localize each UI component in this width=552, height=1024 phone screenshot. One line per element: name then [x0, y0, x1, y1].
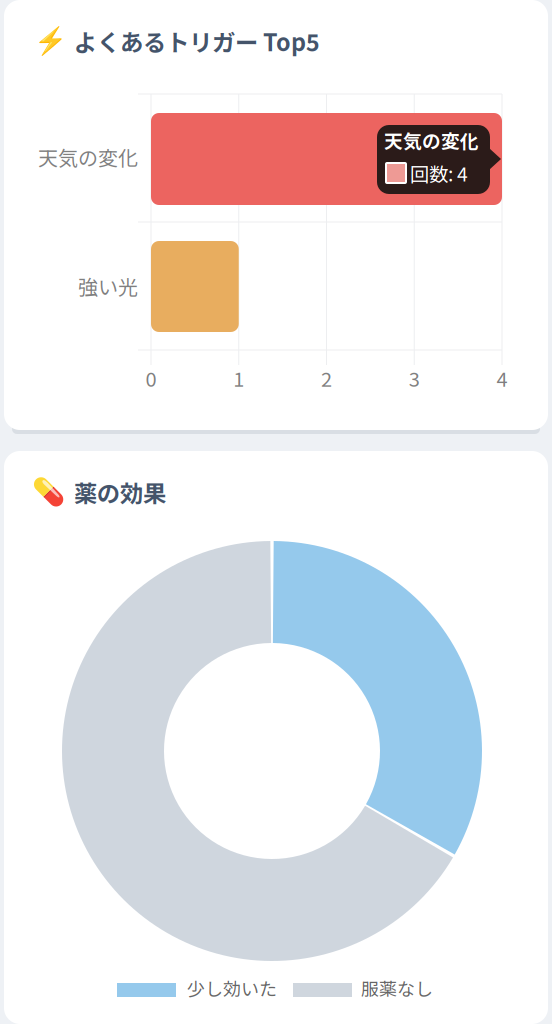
staticText: 1: [233, 363, 244, 392]
staticText: 3: [409, 363, 420, 392]
button[interactable]: 服薬なし: [293, 973, 438, 1007]
staticText: 少し効いた: [187, 975, 277, 1001]
button[interactable]: 少し効いた: [117, 973, 278, 1007]
staticText: ⚡: [33, 25, 66, 57]
staticText: 天気の変化: [38, 142, 138, 171]
staticText: 回数: 4: [410, 159, 468, 187]
staticText: 0: [145, 363, 156, 392]
button[interactable]: 天気の変化 4回: [151, 113, 502, 205]
staticText: 強い光: [78, 271, 138, 300]
button[interactable]: 強い光 1回: [151, 241, 239, 332]
staticText: 4: [496, 363, 507, 392]
staticText: 💊: [31, 476, 64, 508]
staticText: 天気の変化: [384, 126, 479, 153]
staticText: よくあるトリガー Top5: [74, 24, 320, 58]
staticText: 服薬なし: [361, 975, 433, 1001]
staticText: 薬の効果: [74, 475, 166, 509]
staticText: 2: [321, 363, 332, 392]
